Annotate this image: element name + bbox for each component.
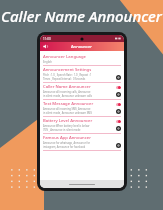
staticText: Battery Level Announcer [43, 118, 116, 124]
staticText: Announce all incoming SMS, Announce [43, 107, 91, 111]
button[interactable]: Caller Name Announcer settings [116, 92, 121, 97]
button[interactable]: Toggle Battery Level Announcer [116, 120, 121, 123]
other: Announcer [43, 44, 48, 49]
button[interactable]: Text Message Announcer [43, 100, 121, 117]
button[interactable]: Announcement Settings [43, 66, 121, 83]
button[interactable]: Announcer Language [43, 53, 121, 66]
staticText: Caller Name Announcer [43, 84, 116, 90]
button[interactable]: Text Message Announcer settings [116, 109, 121, 114]
staticText: Famous App Announcer [43, 135, 121, 141]
button[interactable]: Caller Name Announcer [43, 83, 121, 100]
staticText: in silent mode, Announce unknown SMS [43, 111, 92, 115]
staticText: 11:00 [43, 37, 51, 41]
staticText: Announce all incoming calls, Announce [43, 90, 91, 94]
staticText: Text Message Announcer [43, 101, 116, 107]
staticText: Times , Repeat Interval : 0 Seconds [43, 77, 86, 81]
button[interactable]: Toggle Caller Name Announcer [116, 86, 121, 89]
button[interactable]: Famous App Announcer settings [116, 143, 121, 148]
button[interactable]: Battery Level Announcer settings [116, 126, 121, 131]
staticText: Announcer [71, 44, 93, 49]
button[interactable]: Announcement Settings settings [116, 75, 121, 80]
staticText: Announcement Settings [43, 67, 121, 73]
staticText: Announcer Language [43, 54, 121, 60]
button[interactable]: Battery Level Announcer [43, 117, 121, 134]
staticText: Announce When battery level is below [43, 124, 90, 128]
staticText: 70% , Announce in silent mode [43, 128, 81, 132]
staticText: English [43, 60, 52, 64]
staticText: Caller Name Announcer [1, 6, 162, 26]
button[interactable]: Famous App Announcer [43, 134, 121, 151]
staticText: Announce for whatsapp, Announce for [43, 141, 91, 145]
staticText: instagram, Announce for facebook [43, 145, 86, 149]
button[interactable]: Announcer [40, 42, 124, 51]
button[interactable]: Toggle Text Message Announcer [116, 103, 121, 106]
staticText: in silent mode, Announce unknown calls [43, 94, 92, 98]
staticText: Pitch : 1.0 , Speech Rate : 1.0 , Repeat… [43, 73, 92, 77]
